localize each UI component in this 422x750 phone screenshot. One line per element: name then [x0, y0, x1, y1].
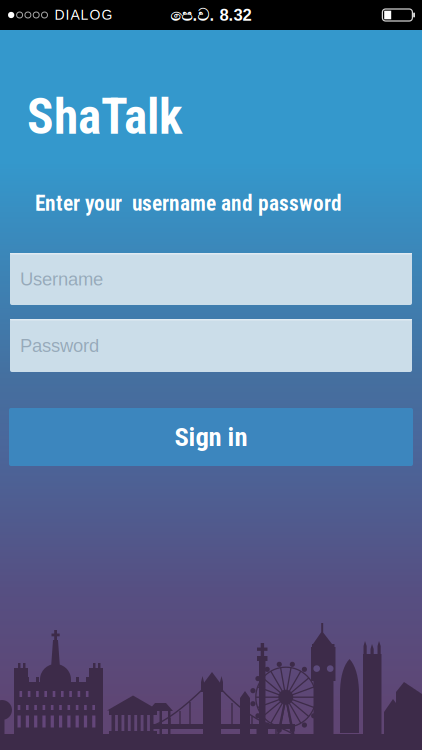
- staticText: Username: [20, 269, 103, 289]
- button[interactable]: Sign in: [9, 408, 413, 466]
- button[interactable]: Username: [10, 253, 412, 305]
- staticText: D I A L O G: [54, 7, 112, 23]
- staticText: පෙ.ව. 8.32: [170, 6, 251, 24]
- staticText: Enter your username and password: [35, 191, 342, 216]
- staticText: ShaTalk: [27, 88, 183, 146]
- staticText: Sign in: [174, 421, 247, 453]
- button[interactable]: Password: [10, 319, 412, 372]
- staticText: Password: [20, 335, 99, 356]
